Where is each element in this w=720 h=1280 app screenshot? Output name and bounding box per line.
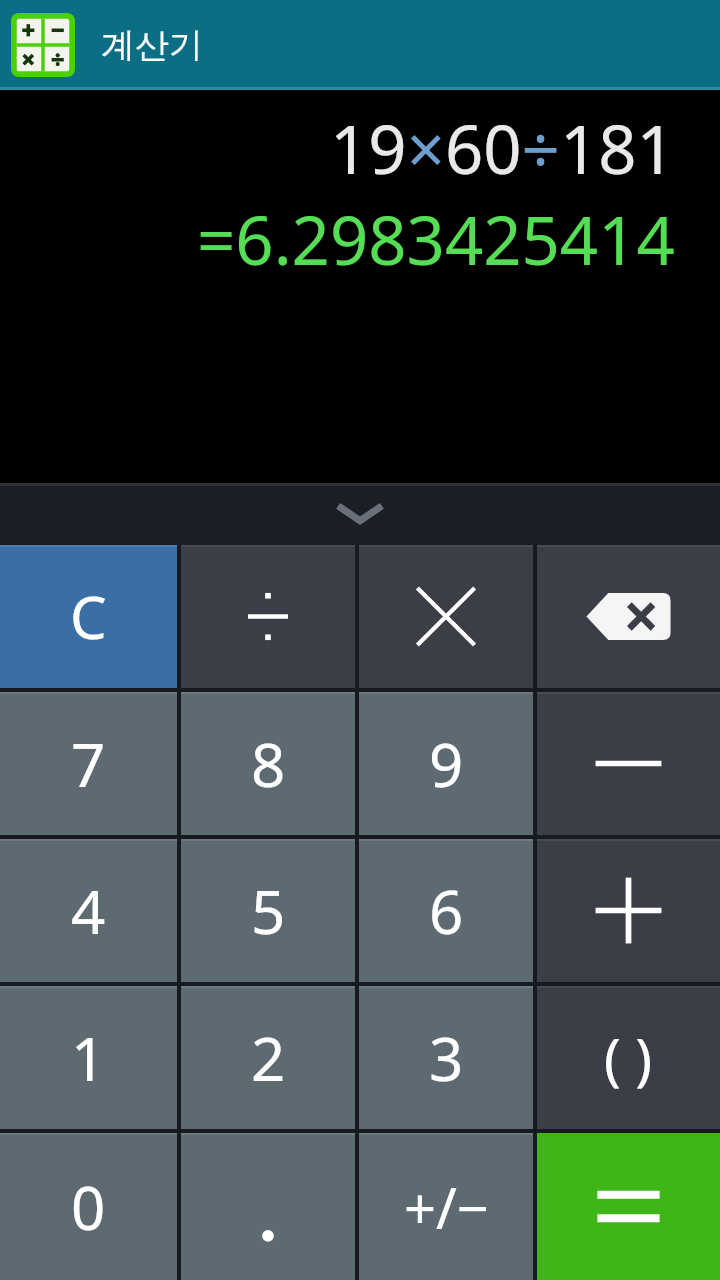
button[interactable]: 6 (359, 839, 533, 982)
button[interactable]: Equals (537, 1133, 720, 1280)
button[interactable]: Collapse display (320, 490, 400, 538)
button[interactable]: C (0, 545, 177, 688)
staticText: 0 (71, 1166, 106, 1248)
staticText: 5 (251, 870, 286, 952)
staticText: 2 (251, 1017, 286, 1099)
staticText: =6.2983425414 (197, 193, 675, 284)
button[interactable]: Toggle sign (359, 1133, 533, 1280)
button[interactable]: 7 (0, 692, 177, 835)
button[interactable]: Plus (537, 839, 720, 982)
staticText: 4 (71, 870, 106, 952)
staticText: 9 (429, 723, 464, 805)
button[interactable]: 9 (359, 692, 533, 835)
button[interactable]: 0 (0, 1133, 177, 1280)
staticText: 1 (71, 1017, 106, 1099)
button[interactable]: 4 (0, 839, 177, 982)
button[interactable]: 5 (181, 839, 355, 982)
staticText: ( ) (604, 1020, 653, 1096)
staticText: 19×60÷181 (330, 102, 675, 193)
button[interactable]: 3 (359, 986, 533, 1129)
button[interactable]: Multiply (359, 545, 533, 688)
staticText: C (70, 577, 107, 656)
staticText: 계산기 (101, 24, 203, 67)
button[interactable]: Minus (537, 692, 720, 835)
button[interactable]: Parentheses (537, 986, 720, 1129)
button[interactable]: Decimal point (181, 1133, 355, 1280)
button[interactable]: Divide (181, 545, 355, 688)
button[interactable]: 2 (181, 986, 355, 1129)
button[interactable]: 1 (0, 986, 177, 1129)
staticText: 7 (71, 723, 106, 805)
button[interactable]: Backspace (537, 545, 720, 688)
button[interactable]: 8 (181, 692, 355, 835)
staticText: 3 (429, 1017, 464, 1099)
staticText: +/− (404, 1169, 489, 1245)
staticText: 8 (251, 723, 286, 805)
staticText: 6 (429, 870, 464, 952)
